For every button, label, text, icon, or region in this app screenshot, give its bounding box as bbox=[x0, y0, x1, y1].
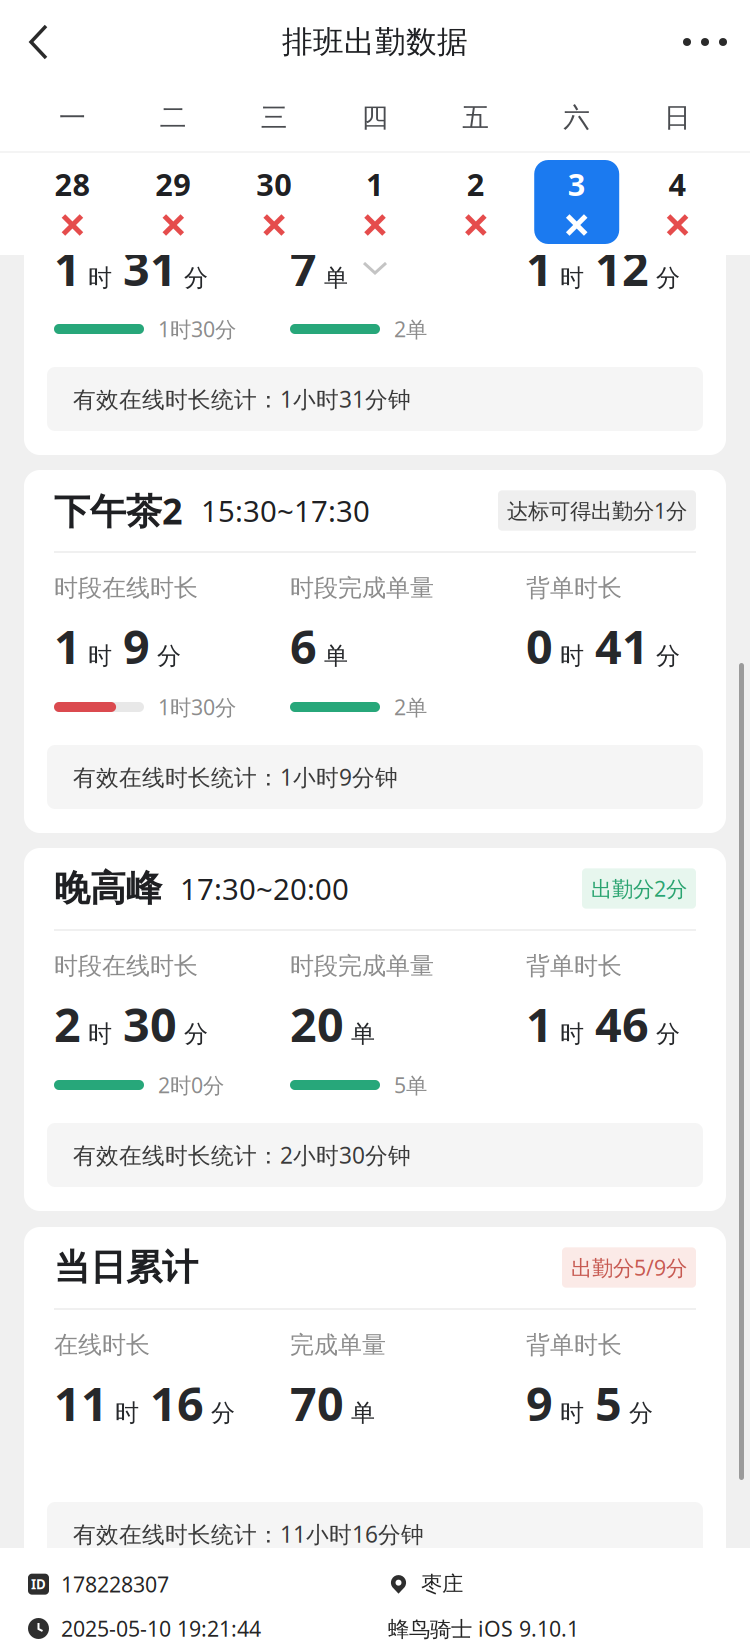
staticText: 20 bbox=[290, 993, 344, 1055]
staticText: 时段完成单量 bbox=[290, 195, 434, 225]
staticText: 排班出勤数据 bbox=[282, 23, 468, 61]
staticText: 有效在线时长统计：11小时16分钟 bbox=[73, 1519, 424, 1549]
staticText: 2单 bbox=[394, 693, 427, 721]
button[interactable]: Back bbox=[0, 0, 67, 84]
staticText: 28 bbox=[54, 164, 90, 204]
staticText: 时 bbox=[560, 1398, 584, 1428]
staticText: 蜂鸟骑士 iOS 9.10.1 bbox=[388, 1614, 579, 1643]
staticText: ID bbox=[31, 1575, 46, 1593]
staticText: 在线时长 bbox=[54, 1330, 150, 1360]
staticText: 分 bbox=[656, 641, 680, 671]
staticText: 时 bbox=[560, 1019, 584, 1049]
staticText: 17:30~20:00 bbox=[180, 869, 349, 908]
staticText: 五 bbox=[462, 101, 489, 134]
staticText: 分 bbox=[656, 263, 680, 293]
staticText: 三 bbox=[261, 101, 288, 134]
staticText: 达标可得出勤分1分 bbox=[507, 496, 687, 525]
staticText: 时段完成单量 bbox=[290, 573, 434, 603]
staticText: 1 bbox=[526, 993, 553, 1055]
staticText: 5 bbox=[595, 1372, 622, 1434]
staticText: 2025-05-10 19:21:44 bbox=[61, 1614, 261, 1643]
staticText: 31 bbox=[123, 237, 177, 299]
staticText: 29 bbox=[155, 164, 191, 204]
staticText: 178228307 bbox=[61, 1570, 169, 1598]
staticText: 70 bbox=[290, 1372, 344, 1434]
button[interactable]: 29 bbox=[123, 160, 224, 244]
staticText: 单 bbox=[351, 1398, 375, 1428]
staticText: 5单 bbox=[394, 1071, 427, 1099]
staticText: 枣庄 bbox=[421, 1571, 463, 1597]
staticText: 2单 bbox=[394, 315, 427, 343]
staticText: 下午茶2 bbox=[54, 487, 183, 534]
staticText: 六 bbox=[563, 101, 590, 134]
staticText: 出勤分5/9分 bbox=[571, 1253, 687, 1282]
staticText: 分 bbox=[211, 1398, 235, 1428]
staticText: 2 bbox=[54, 993, 81, 1055]
staticText: 2 bbox=[467, 164, 485, 204]
staticText: 1 bbox=[366, 164, 384, 204]
button[interactable]: 4 bbox=[627, 160, 728, 244]
staticText: 时段完成单量 bbox=[290, 951, 434, 981]
staticText: 分 bbox=[656, 1019, 680, 1049]
staticText: 6 bbox=[290, 615, 317, 677]
staticText: 分 bbox=[184, 263, 208, 293]
staticText: 4 bbox=[669, 164, 687, 204]
staticText: 时 bbox=[88, 1019, 112, 1049]
staticText: 背单时长 bbox=[526, 195, 622, 225]
staticText: 一 bbox=[59, 101, 86, 134]
staticText: 完成单量 bbox=[290, 1330, 386, 1360]
staticText: 16 bbox=[150, 1372, 204, 1434]
staticText: 背单时长 bbox=[526, 951, 622, 981]
staticText: 时 bbox=[560, 641, 584, 671]
staticText: 30 bbox=[123, 993, 177, 1055]
staticText: 二 bbox=[160, 101, 187, 134]
staticText: 2时0分 bbox=[158, 1071, 224, 1099]
staticText: 46 bbox=[595, 993, 649, 1055]
staticText: 7 bbox=[290, 237, 317, 299]
staticText: 1 bbox=[54, 615, 81, 677]
staticText: 30 bbox=[256, 164, 292, 204]
staticText: 9 bbox=[526, 1372, 553, 1434]
staticText: 午餐 bbox=[54, 110, 126, 155]
staticText: 1 bbox=[526, 237, 553, 299]
staticText: 0 bbox=[526, 615, 553, 677]
staticText: 11 bbox=[54, 1372, 108, 1434]
button[interactable]: Expand calendar bbox=[335, 257, 415, 279]
staticText: 3 bbox=[568, 164, 586, 204]
staticText: 时 bbox=[115, 1398, 139, 1428]
button[interactable]: More options bbox=[666, 0, 750, 84]
staticText: 11:00~13:30 bbox=[144, 113, 313, 152]
staticText: 12 bbox=[595, 237, 649, 299]
staticText: 单 bbox=[324, 263, 348, 293]
staticText: 日 bbox=[664, 101, 691, 134]
staticText: 分 bbox=[184, 1019, 208, 1049]
staticText: 时 bbox=[88, 263, 112, 293]
staticText: 41 bbox=[595, 615, 649, 677]
staticText: 背单时长 bbox=[526, 1330, 622, 1360]
staticText: 1时30分 bbox=[158, 315, 236, 343]
staticText: 时段在线时长 bbox=[54, 573, 198, 603]
button[interactable]: 2 bbox=[425, 160, 526, 244]
staticText: 四 bbox=[361, 101, 388, 134]
staticText: 时段在线时长 bbox=[54, 951, 198, 981]
staticText: 时 bbox=[560, 263, 584, 293]
staticText: 当日累计 bbox=[54, 1245, 198, 1290]
staticText: 晚高峰 bbox=[54, 866, 162, 911]
staticText: 时 bbox=[88, 641, 112, 671]
button[interactable]: 3 bbox=[526, 160, 627, 244]
staticText: 分 bbox=[629, 1398, 653, 1428]
staticText: 单 bbox=[324, 641, 348, 671]
button[interactable]: 30 bbox=[224, 160, 325, 244]
staticText: 出勤分2分 bbox=[591, 874, 687, 903]
button[interactable]: 1 bbox=[325, 160, 425, 244]
staticText: 15:30~17:30 bbox=[201, 491, 370, 530]
staticText: 分 bbox=[157, 641, 181, 671]
staticText: 有效在线时长统计：1小时9分钟 bbox=[73, 762, 398, 792]
staticText: 出勤分2分 bbox=[591, 118, 687, 147]
staticText: 背单时长 bbox=[526, 573, 622, 603]
staticText: 1 bbox=[54, 237, 81, 299]
staticText: 有效在线时长统计：2小时30分钟 bbox=[73, 1140, 411, 1170]
staticText: 时段在线时长 bbox=[54, 195, 198, 225]
staticText: 有效在线时长统计：1小时31分钟 bbox=[73, 384, 411, 414]
button[interactable]: 28 bbox=[22, 160, 123, 244]
